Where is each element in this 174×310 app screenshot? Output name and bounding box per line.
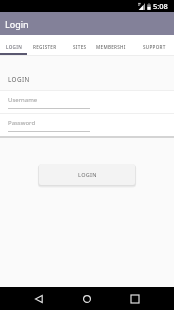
staticText: Password <box>8 119 36 127</box>
staticText: LOGIN <box>78 171 97 178</box>
staticText: Username <box>8 96 38 104</box>
button[interactable]: LOGIN <box>0 35 27 55</box>
button[interactable]: Recents <box>111 287 159 310</box>
button[interactable]: SITES <box>61 35 98 55</box>
button[interactable]: LOGIN <box>39 164 135 185</box>
button[interactable]: Back <box>15 287 63 310</box>
staticText: MEMBERSHIP <box>96 44 128 50</box>
button[interactable]: Home <box>63 287 111 310</box>
button[interactable]: MEMBERSHIP <box>96 35 128 55</box>
button[interactable]: SUPPORT <box>133 35 174 55</box>
staticText: SITES <box>73 44 87 50</box>
staticText: REGISTER <box>33 44 57 50</box>
button[interactable]: REGISTER <box>28 35 62 55</box>
staticText: SUPPORT <box>143 44 166 50</box>
staticText: LOGIN <box>6 44 22 50</box>
staticText: Login <box>5 18 29 30</box>
staticText: 5:08 <box>153 1 168 11</box>
staticText: LOGIN <box>8 75 30 84</box>
